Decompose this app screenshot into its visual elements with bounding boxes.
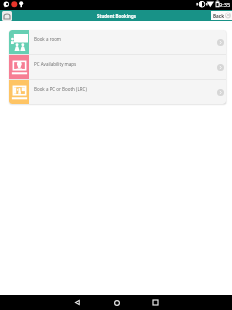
button[interactable]: Recents [149,296,162,309]
button[interactable]: Back [211,11,232,20]
button[interactable]: App home [2,11,12,21]
button[interactable]: Open Book a PC or Booth (LRC) [217,89,224,96]
button[interactable]: Open PC Availability maps [217,64,224,71]
button[interactable]: Book a room [9,30,226,54]
staticText: PC Availability maps [34,61,77,67]
staticText: Book a PC or Booth (LRC) [34,86,87,92]
button[interactable]: Book a PC or Booth (LRC) [9,80,226,104]
staticText: Book a room [34,36,62,42]
button[interactable]: Back [71,296,84,309]
staticText: 9:35 [219,1,231,9]
staticText: Back [213,13,225,19]
staticText: Student Bookings [97,13,136,19]
button[interactable]: PC Availability maps [9,55,226,79]
button[interactable]: Open Book a room [217,39,224,46]
button[interactable]: Home [110,296,123,309]
